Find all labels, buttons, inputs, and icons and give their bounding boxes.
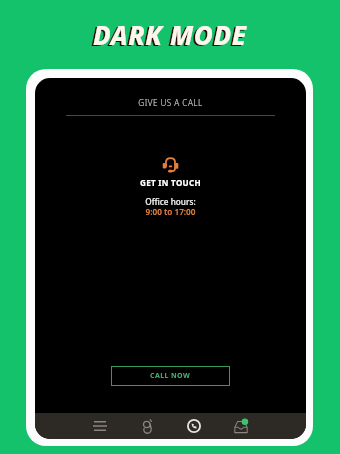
- staticText: DARK MODE: [91, 18, 245, 53]
- button[interactable]: Call: [171, 413, 218, 439]
- staticText: GET IN TOUCH: [35, 177, 306, 188]
- button[interactable]: Goodreads: [124, 413, 171, 439]
- staticText: GIVE US A CALL: [35, 97, 306, 108]
- staticText: CALL NOW: [150, 371, 191, 381]
- staticText: 9:00 to 17:00: [35, 206, 306, 217]
- button[interactable]: Inbox: [218, 413, 265, 439]
- button[interactable]: CALL NOW: [111, 366, 230, 386]
- staticText: Office hours:: [35, 196, 306, 207]
- staticText: DARK MODE: [93, 17, 247, 52]
- button[interactable]: Menu: [76, 413, 124, 439]
